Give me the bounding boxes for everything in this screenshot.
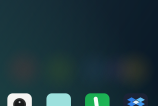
button[interactable]: Phone xyxy=(85,93,109,106)
button[interactable]: Dropbox xyxy=(123,93,148,106)
button[interactable]: App xyxy=(46,93,71,106)
button[interactable]: Camera xyxy=(7,93,32,106)
